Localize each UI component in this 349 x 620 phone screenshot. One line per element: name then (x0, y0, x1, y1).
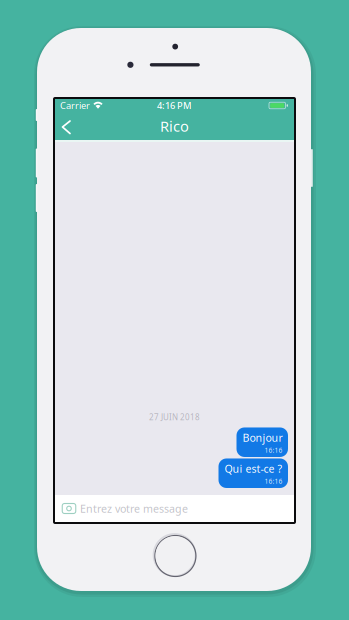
staticText: 16:16 (264, 446, 282, 454)
staticText: Carrier (60, 99, 90, 112)
staticText: Entrez votre message (80, 501, 188, 516)
button[interactable]: Back (55, 112, 79, 140)
staticText: 16:16 (264, 477, 282, 485)
button[interactable]: Entrez votre message (80, 498, 260, 518)
staticText: Rico (160, 116, 189, 136)
staticText: 27 JUIN 2018 (149, 412, 200, 422)
staticText: Bonjour (242, 430, 282, 445)
staticText: Qui est-ce ? (224, 461, 282, 476)
button[interactable]: Camera (59, 498, 79, 518)
staticText: 4:16 PM (157, 99, 192, 112)
